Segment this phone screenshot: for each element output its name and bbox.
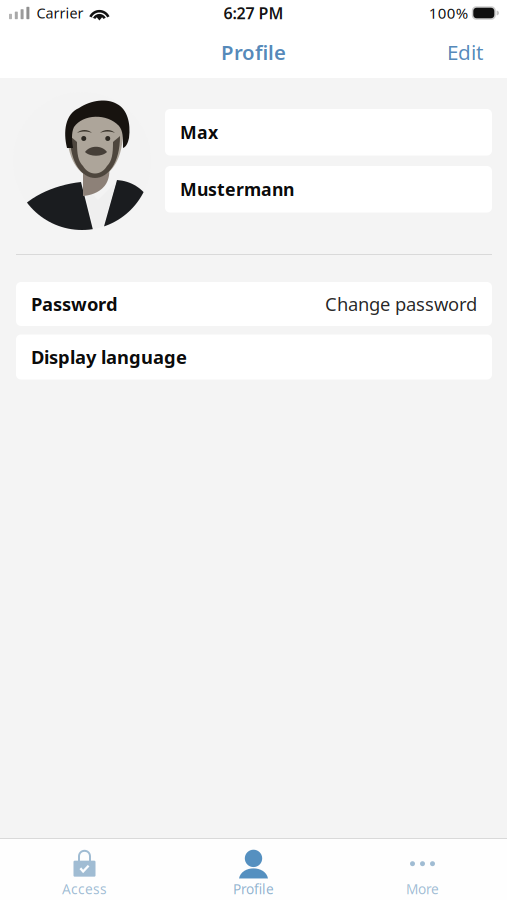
staticText: Edit: [447, 38, 483, 66]
staticText: Profile: [221, 38, 286, 66]
staticText: Mustermann: [180, 177, 294, 201]
staticText: Profile: [233, 880, 274, 898]
button[interactable]: Profile: [169, 838, 338, 900]
staticText: Password: [31, 291, 118, 316]
button[interactable]: More: [338, 838, 507, 900]
staticText: Access: [62, 880, 107, 898]
button[interactable]: Max: [165, 109, 492, 155]
button[interactable]: Access: [0, 838, 169, 900]
staticText: Max: [180, 120, 218, 144]
button[interactable]: Password: [16, 282, 492, 326]
staticText: 100%: [429, 3, 468, 23]
staticText: Change password: [325, 291, 477, 316]
staticText: More: [406, 880, 439, 898]
button[interactable]: Mustermann: [165, 166, 492, 212]
button[interactable]: Edit: [435, 29, 495, 75]
staticText: 6:27 PM: [223, 2, 283, 24]
staticText: Carrier: [36, 3, 83, 23]
button[interactable]: Display language: [16, 334, 492, 379]
staticText: Display language: [31, 344, 187, 369]
